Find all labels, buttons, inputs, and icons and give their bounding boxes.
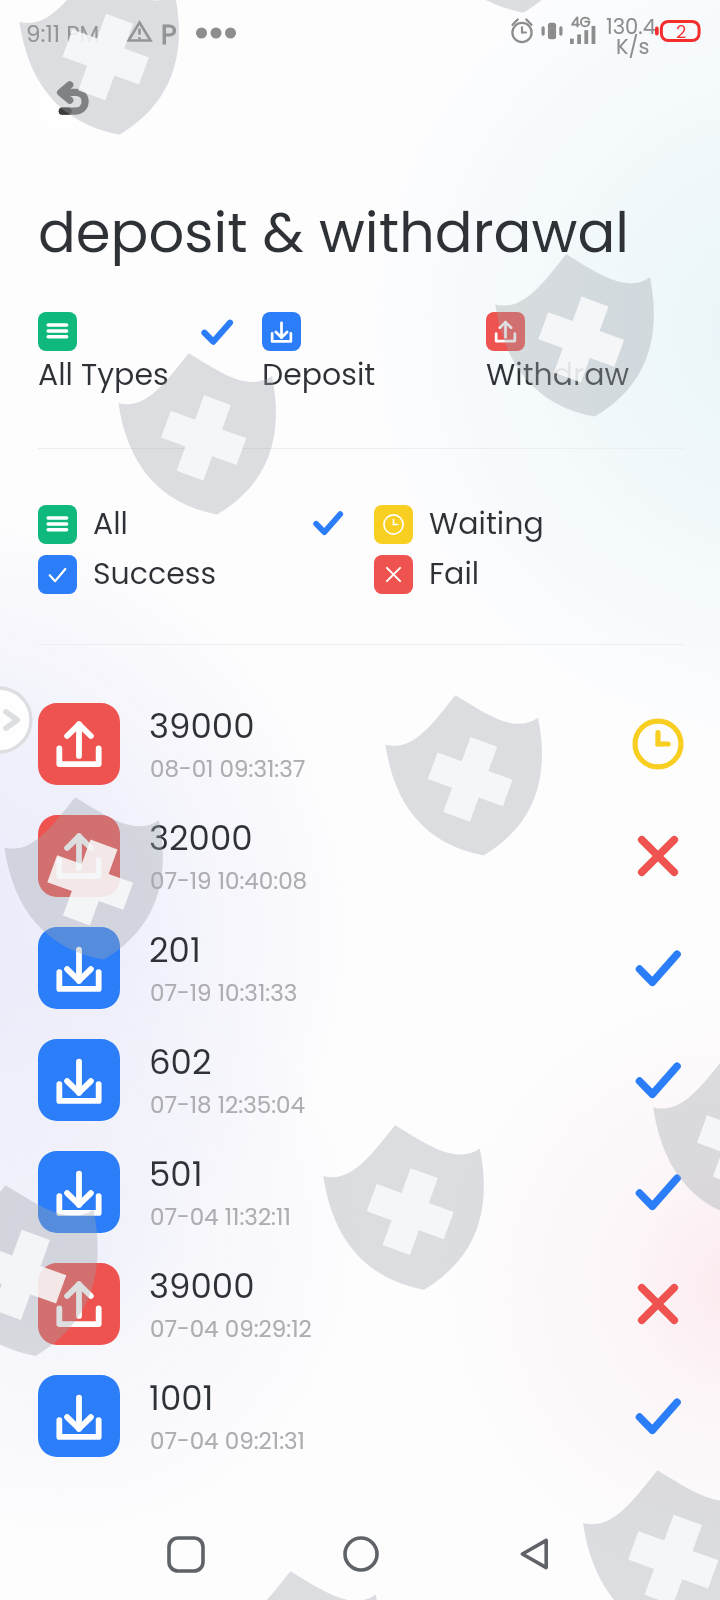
button[interactable]: Withdraw — [486, 312, 525, 351]
staticText: 1001 — [149, 1374, 214, 1422]
staticText: Fail — [429, 553, 480, 595]
staticText: 07-18 12:35:04 — [150, 1089, 305, 1121]
staticText: 130.4 — [606, 12, 656, 41]
button[interactable]: Home — [327, 1520, 395, 1588]
staticText: 4G — [571, 12, 591, 32]
button[interactable]: Withdraw — [486, 354, 630, 396]
button[interactable]: 501 — [0, 1136, 720, 1248]
staticText: 39000 — [149, 702, 255, 750]
button[interactable]: Deposit — [262, 312, 301, 351]
staticText: deposit & withdrawal — [38, 193, 630, 271]
staticText: 07-04 11:32:11 — [150, 1201, 291, 1233]
button[interactable]: 39000 — [0, 688, 720, 800]
staticText: 07-19 10:40:08 — [150, 865, 308, 897]
button[interactable]: Back — [502, 1520, 570, 1588]
button[interactable]: All Types — [38, 312, 77, 351]
button[interactable]: All Types — [38, 354, 169, 396]
button[interactable]: 602 — [0, 1024, 720, 1136]
staticText: 08-01 09:31:37 — [150, 753, 306, 785]
button[interactable]: 201 — [0, 912, 720, 1024]
staticText: 2 — [676, 19, 687, 44]
button[interactable]: Back — [38, 64, 105, 131]
staticText: All — [93, 503, 128, 545]
staticText: 501 — [149, 1150, 203, 1198]
button[interactable]: Success — [38, 553, 217, 595]
button[interactable]: Fail — [374, 553, 480, 595]
button[interactable]: Waiting — [374, 503, 544, 545]
staticText: Success — [93, 553, 217, 595]
button[interactable]: All — [38, 503, 128, 545]
staticText: 39000 — [149, 1262, 255, 1310]
staticText: 201 — [149, 926, 201, 974]
button[interactable]: Open side menu — [0, 686, 33, 754]
button[interactable]: 39000 — [0, 1248, 720, 1360]
button[interactable]: 32000 — [0, 800, 720, 912]
staticText: 32000 — [149, 814, 253, 862]
staticText: 9:11 PM — [26, 18, 100, 50]
button[interactable]: Deposit — [262, 354, 376, 396]
staticText: Waiting — [429, 503, 544, 545]
staticText: 07-19 10:31:33 — [150, 977, 298, 1009]
button[interactable]: Recent apps — [152, 1520, 220, 1588]
button[interactable]: 1001 — [0, 1360, 720, 1472]
staticText: 602 — [149, 1038, 212, 1086]
staticText: K/s — [616, 32, 650, 61]
staticText: 07-04 09:21:31 — [150, 1425, 305, 1457]
staticText: 07-04 09:29:12 — [150, 1313, 312, 1345]
staticText: P — [161, 16, 177, 54]
